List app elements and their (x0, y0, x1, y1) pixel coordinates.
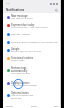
staticText: Settings (6, 105, 13, 107)
staticText: Card ending 4821 · pay now to avoid (11, 26, 48, 29)
staticText: automatically (11, 69, 28, 72)
staticText: 9:41 (6, 2, 10, 5)
staticText: Add extra details here (11, 94, 33, 97)
staticText: Payment due today (11, 23, 35, 26)
staticText: Functional cookies (11, 56, 34, 59)
staticText: Optional notes (11, 91, 29, 94)
button[interactable]: Software update available for your devic… (3, 38, 61, 46)
staticText: Alex sent you a photo (11, 17, 33, 20)
button[interactable]: Payment due today (3, 21, 61, 30)
staticText: Display options (11, 81, 30, 84)
button[interactable]: Optional notes (3, 90, 61, 100)
button[interactable]: Search (54, 8, 59, 13)
staticText: Remove tags (11, 66, 27, 69)
staticText: New message (11, 14, 28, 17)
button[interactable]: Remove tags (3, 63, 61, 77)
staticText: Your recent photos (11, 72, 31, 75)
staticText: Google (11, 47, 20, 50)
staticText: Privacy (31, 105, 37, 107)
button[interactable]: New message (3, 13, 61, 21)
staticText: Tap to edit (11, 97, 22, 100)
staticText: Calendar · standup (11, 33, 31, 36)
staticText: Choose how items appear (11, 84, 38, 87)
staticText: Notifications (6, 8, 25, 12)
button[interactable]: Display options (3, 77, 61, 90)
staticText: Collect usage (11, 59, 25, 62)
button[interactable]: Google (3, 46, 61, 54)
staticText: Software update available for your devic… (11, 41, 58, 44)
button[interactable]: Functional cookies (3, 54, 61, 63)
staticText: Help (54, 105, 58, 107)
button[interactable]: Calendar · standup (3, 30, 61, 38)
staticText: Security alert for your account (11, 50, 42, 53)
